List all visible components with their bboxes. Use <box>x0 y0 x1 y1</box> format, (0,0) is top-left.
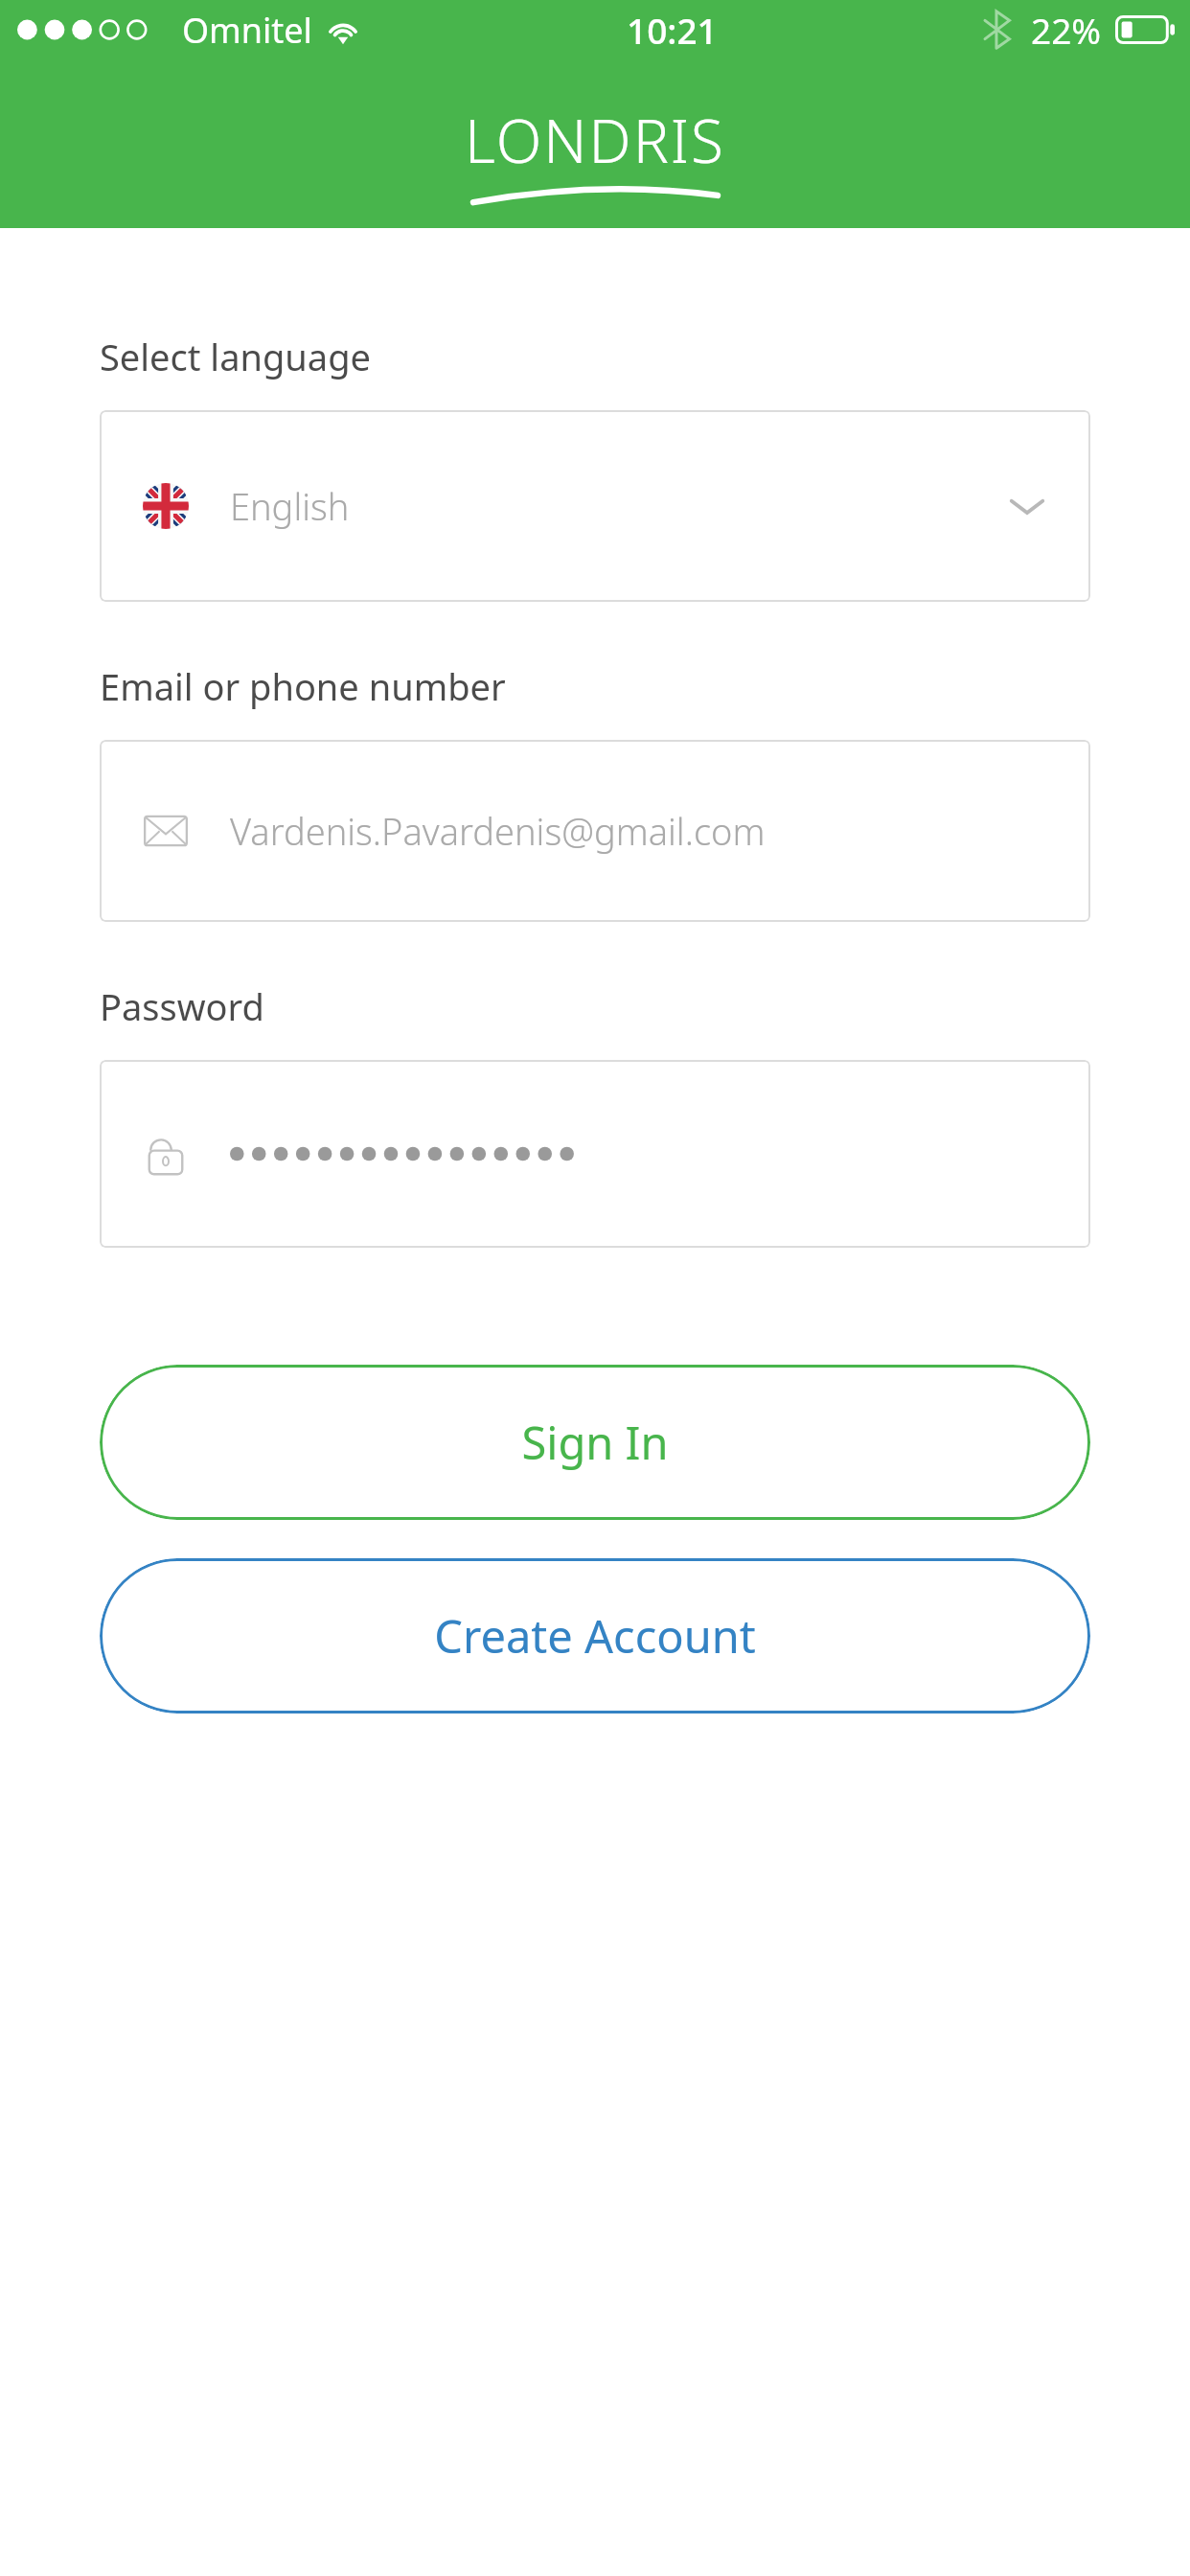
staticText: Select language <box>100 332 371 381</box>
staticText: Password <box>100 981 264 1031</box>
staticText: Sign In <box>521 1412 669 1473</box>
button[interactable]: Create Account <box>100 1558 1090 1713</box>
staticText: 10:21 <box>627 6 718 54</box>
button[interactable] <box>100 1060 1090 1248</box>
staticText: English <box>230 481 350 531</box>
staticText: 22% <box>1031 6 1102 54</box>
staticText: Email or phone number <box>100 661 506 711</box>
staticText: LONDRIS <box>465 100 725 180</box>
staticText: Create Account <box>434 1605 756 1667</box>
other: Bluetooth <box>985 11 1010 49</box>
button[interactable]: Vardenis.Pavardenis@gmail.com <box>100 740 1090 922</box>
staticText: Vardenis.Pavardenis@gmail.com <box>230 806 766 856</box>
other: Expand language list <box>1006 485 1048 527</box>
button[interactable]: Sign In <box>100 1365 1090 1520</box>
button[interactable]: English <box>100 410 1090 602</box>
staticText: Omnitel <box>182 7 312 54</box>
